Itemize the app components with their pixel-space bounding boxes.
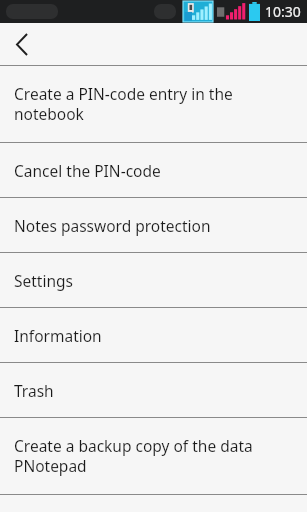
staticText: Create a PIN-code entry in the notebook [14, 83, 293, 125]
staticText: Cancel the PIN-code [14, 160, 161, 181]
button[interactable]: Trash [0, 363, 307, 417]
staticText: Settings [14, 270, 73, 291]
staticText: 10:30 [265, 2, 301, 21]
staticText: Notes password protection [14, 215, 211, 236]
staticText: Create a backup copy of the data PNotepa… [14, 435, 293, 477]
button[interactable]: Create a PIN-code entry in the notebook [0, 66, 307, 142]
staticText: Trash [14, 380, 54, 401]
button[interactable]: Back [0, 23, 44, 65]
button[interactable]: Settings [0, 253, 307, 307]
button[interactable]: Information [0, 308, 307, 362]
button[interactable]: Notes password protection [0, 198, 307, 252]
button[interactable]: Create a backup copy of the data PNotepa… [0, 418, 307, 494]
staticText: Information [14, 325, 102, 346]
button[interactable]: Cancel the PIN-code [0, 143, 307, 197]
